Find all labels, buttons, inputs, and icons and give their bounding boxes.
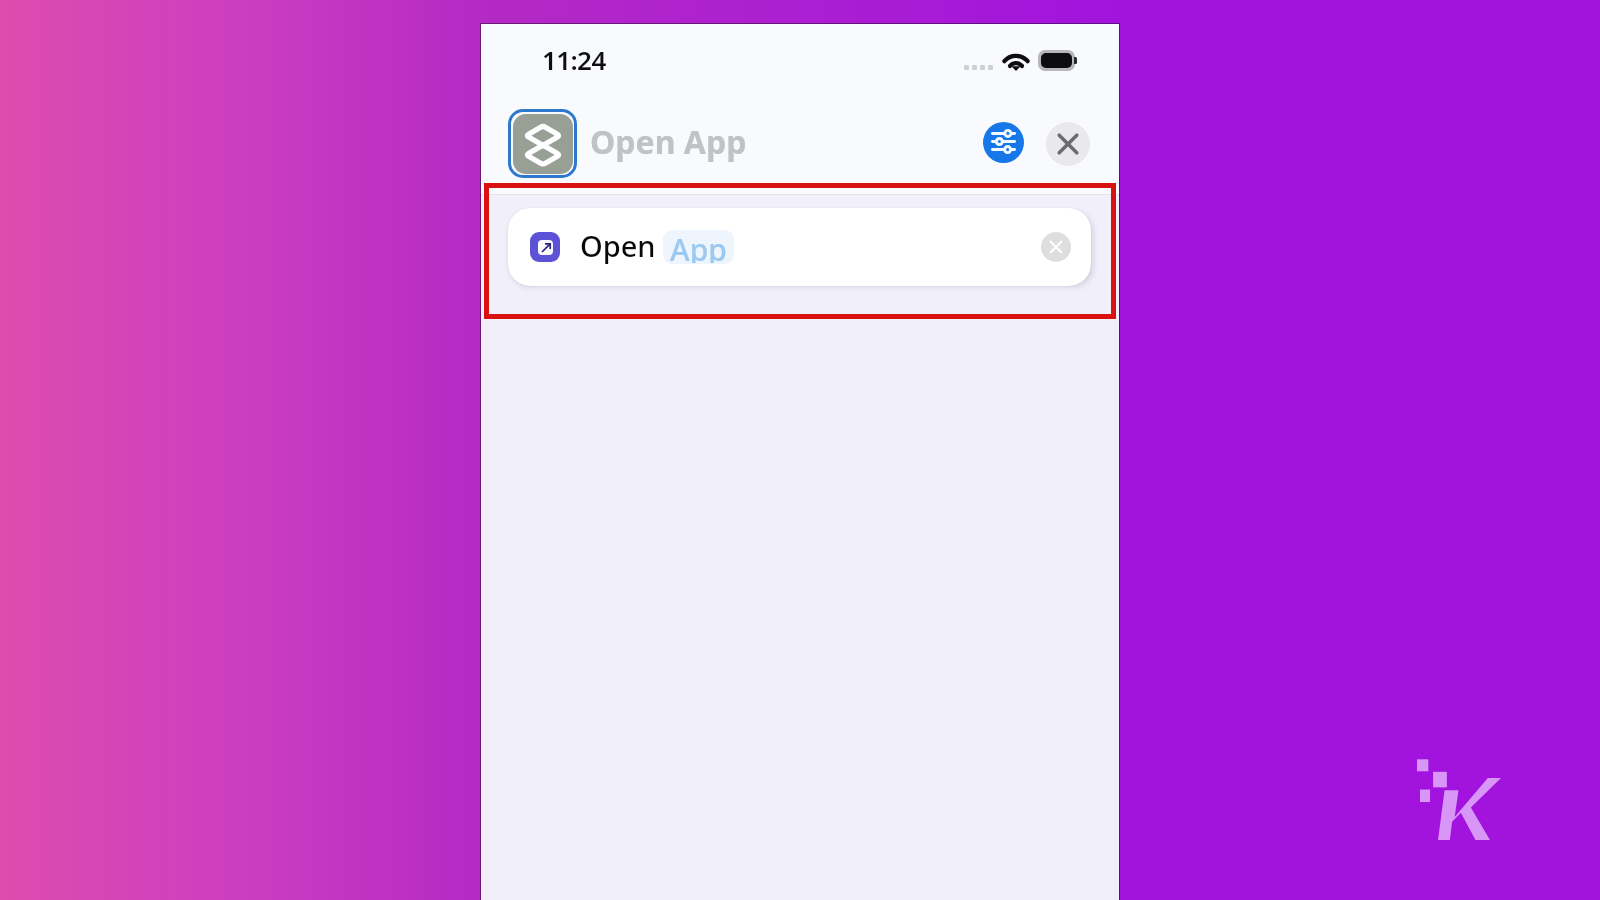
staticText: Open App	[590, 120, 747, 164]
staticText: App	[670, 230, 727, 263]
staticText: Open	[580, 226, 656, 265]
button[interactable]: Clear	[1041, 232, 1071, 262]
button[interactable]: App icon	[508, 109, 577, 178]
button[interactable]: Close	[1046, 122, 1090, 166]
staticText: 11:24	[542, 42, 606, 77]
button[interactable]: Filter settings	[983, 122, 1024, 163]
button[interactable]: Open	[508, 208, 1091, 286]
